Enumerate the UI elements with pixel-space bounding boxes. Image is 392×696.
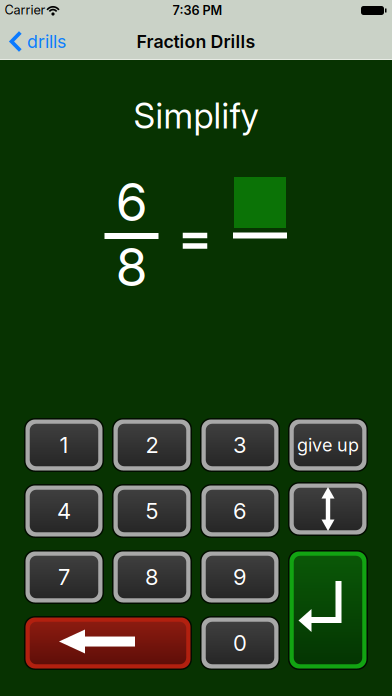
button[interactable]: 7	[24, 550, 104, 604]
staticText: drills	[27, 31, 66, 52]
staticText: 4	[57, 498, 71, 524]
button[interactable]: Backspace	[24, 616, 192, 670]
staticText: 2	[145, 432, 158, 458]
button[interactable]: 9	[200, 550, 280, 604]
button[interactable]: 2	[112, 418, 192, 472]
button[interactable]: 6	[200, 484, 280, 538]
staticText: 8	[145, 564, 159, 590]
staticText: 5	[145, 498, 158, 524]
button[interactable]: 3	[200, 418, 280, 472]
staticText: Simplify	[133, 95, 258, 137]
button[interactable]: drills	[6, 27, 68, 55]
button[interactable]: 8	[112, 550, 192, 604]
staticText: Fraction Drills	[136, 31, 255, 52]
staticText: 6	[115, 170, 147, 233]
staticText: give up	[297, 434, 359, 456]
button[interactable]: 4	[24, 484, 104, 538]
button[interactable]: 0	[200, 616, 280, 670]
staticText: 7	[58, 564, 70, 590]
button[interactable]: give up	[288, 418, 368, 472]
staticText: 7:36 PM	[172, 3, 222, 18]
staticText: 0	[233, 630, 247, 656]
staticText: Carrier	[4, 2, 45, 18]
button[interactable]: 1	[24, 418, 104, 472]
button[interactable]: Switch numerator/denominator	[288, 482, 368, 536]
staticText: 3	[233, 432, 247, 458]
button[interactable]: 5	[112, 484, 192, 538]
button[interactable]: Enter	[288, 550, 368, 670]
staticText: 1	[59, 432, 68, 458]
staticText: 6	[233, 498, 247, 524]
staticText: 9	[233, 564, 247, 590]
staticText: 8	[115, 235, 147, 298]
